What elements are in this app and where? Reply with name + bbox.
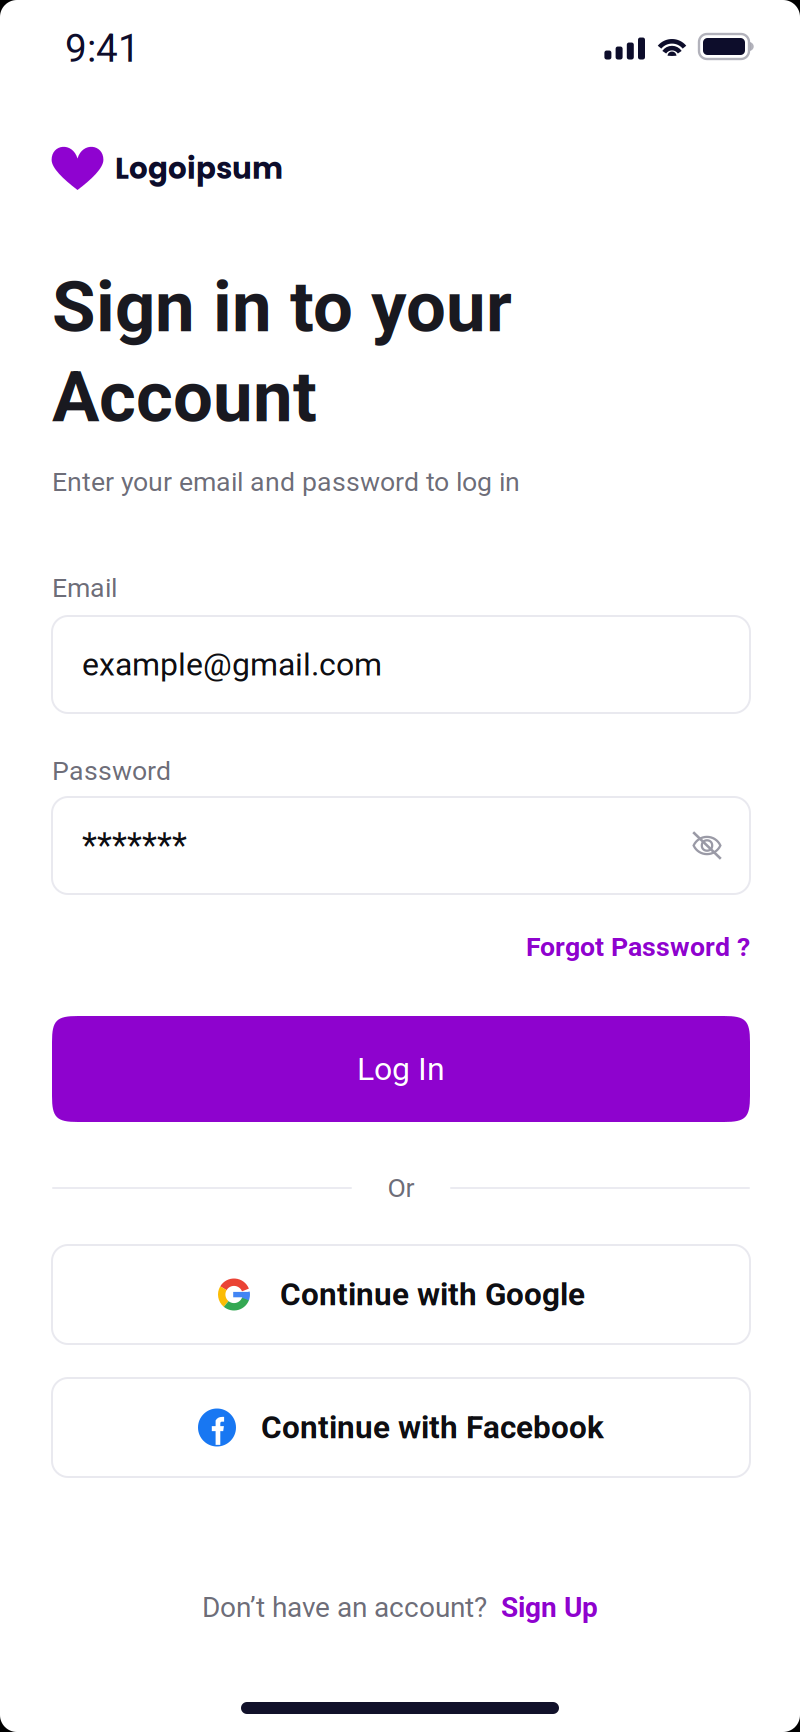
staticText: Don’t have an account? <box>202 1591 487 1624</box>
button[interactable]: Sign Up <box>487 1591 598 1624</box>
button[interactable]: Continue with Google <box>52 1245 750 1344</box>
staticText: Sign Up <box>501 1591 598 1624</box>
staticText: Forgot Password ? <box>526 931 750 963</box>
staticText: Continue with Facebook <box>261 1409 604 1446</box>
staticText: Log In <box>357 1050 445 1088</box>
staticText: Sign in to your <box>52 266 512 348</box>
staticText: Logoipsum <box>115 148 283 189</box>
staticText: Or <box>387 1172 414 1204</box>
staticText: Password <box>52 755 171 787</box>
button[interactable]: Show password <box>692 831 750 860</box>
staticText: 9:41 <box>65 26 140 71</box>
staticText: Enter your email and password to log in <box>52 466 520 498</box>
staticText: ******* <box>82 825 187 866</box>
button[interactable]: Forgot Password ? <box>526 932 750 962</box>
staticText: example@gmail.com <box>82 646 382 683</box>
staticText: Email <box>52 572 117 604</box>
staticText: Account <box>52 356 317 438</box>
staticText: Continue with Google <box>280 1276 585 1313</box>
button[interactable]: Log In <box>52 1016 750 1122</box>
button[interactable]: Continue with Facebook <box>52 1378 750 1477</box>
